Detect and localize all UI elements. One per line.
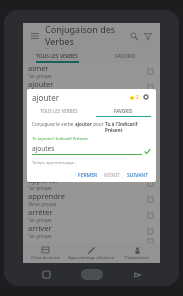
staticText: Verbes Français — [45, 47, 79, 49]
staticText: 1er groupe — [28, 73, 52, 79]
button[interactable]: Choix de forme — [23, 247, 68, 260]
other: Favorite apparaître — [145, 146, 155, 156]
staticText: 2 — [136, 94, 139, 101]
other: Favorite arrêter — [145, 210, 155, 220]
staticText: 1er groupe — [28, 185, 52, 191]
staticText: appeler — [28, 159, 55, 169]
button[interactable]: appeler — [23, 159, 160, 175]
other: Favorite ajouter — [145, 82, 155, 92]
button[interactable]: apparaître — [23, 143, 160, 159]
staticText: aimer — [28, 63, 49, 73]
other: Favorite apercevoir — [145, 114, 155, 124]
other: Favorite asseoir — [145, 239, 155, 243]
other: Favorite arriver — [145, 226, 155, 236]
staticText: Temps apprentissage : — [32, 160, 77, 166]
button[interactable]: apercevoir — [23, 111, 160, 127]
staticText: apparaître — [28, 143, 65, 153]
button[interactable]: Menu — [28, 29, 42, 43]
staticText: Tu à l'Indicatif Présent — [105, 121, 151, 133]
button[interactable]: FAVORIS — [91, 105, 156, 117]
button[interactable]: aimer — [23, 63, 160, 79]
staticText: pour — [92, 121, 105, 127]
staticText: Choix de forme — [31, 255, 60, 260]
other: Favorite apporter — [145, 178, 155, 188]
other: Favorite aimer — [145, 66, 155, 76]
button[interactable]: s'apercevoir — [23, 127, 160, 143]
staticText: 3ème groupe — [28, 121, 57, 127]
other: Favorite aller — [145, 98, 155, 108]
staticText: Conjugaison des Verbes — [45, 23, 127, 47]
staticText: Tu (ajouter) Indicatif Présent — [32, 136, 88, 142]
staticText: 3ème groupe — [28, 105, 57, 111]
staticText: 3ème groupe — [28, 153, 57, 159]
button[interactable]: Settings — [141, 92, 151, 102]
staticText: aller — [28, 95, 44, 105]
staticText: 1er groupe — [28, 217, 52, 223]
staticText: ajouter — [28, 79, 54, 89]
button[interactable]: FAVORIS — [91, 49, 160, 63]
staticText: SUIVANT — [127, 172, 149, 179]
staticText: Apprentissage d'écriture — [68, 255, 114, 260]
button[interactable]: asseoir — [23, 239, 160, 243]
button[interactable]: FERMER — [75, 170, 101, 181]
staticText: apprendre — [28, 191, 66, 201]
staticText: 3ème groupe — [28, 201, 57, 207]
staticText: TOUS LES VERBES — [36, 53, 78, 60]
staticText: 1er groupe — [28, 89, 52, 95]
staticText: 1er groupe — [28, 233, 52, 239]
button[interactable]: TOUS LES VERBES — [27, 105, 91, 117]
button[interactable]: Score — [127, 93, 136, 102]
button[interactable]: Filter — [141, 29, 155, 43]
staticText: arrêter — [28, 207, 53, 217]
staticText: arriver — [28, 223, 52, 233]
staticText: ajouter — [75, 121, 92, 127]
button[interactable]: ajouter — [23, 79, 160, 95]
staticText: FAVORIS — [115, 53, 136, 60]
button[interactable]: arrêter — [23, 207, 160, 223]
button[interactable]: RÉINIT — [101, 170, 124, 181]
staticText: apporter — [28, 175, 60, 185]
button[interactable]: aller — [23, 95, 160, 111]
staticText: asseoir — [28, 239, 54, 243]
other: Back — [114, 271, 162, 279]
staticText: FAVORIS — [114, 108, 133, 114]
button[interactable]: arriver — [23, 223, 160, 239]
staticText: 3ème groupe — [28, 137, 57, 143]
button[interactable]: apporter — [23, 175, 160, 191]
other: Recents — [22, 271, 70, 278]
staticText: FERMER — [78, 172, 98, 179]
staticText: Conjuguez le verbe — [32, 121, 75, 127]
button[interactable]: Prépositions — [114, 247, 160, 260]
other: Favorite apprendre — [145, 194, 155, 204]
staticText: Prépositions — [125, 255, 149, 260]
staticText: TOUS LES VERBES — [40, 108, 78, 114]
staticText: ajouter — [32, 92, 127, 103]
staticText: RÉINIT — [104, 172, 121, 179]
staticText: ajoutes — [32, 144, 55, 153]
button[interactable]: TOUS LES VERBES — [23, 49, 91, 63]
button[interactable]: apprendre — [23, 191, 160, 207]
button[interactable]: SUIVANT — [124, 170, 152, 181]
button[interactable]: Apprentissage d'écriture — [68, 247, 114, 260]
staticText: apercevoir — [28, 111, 66, 121]
other: Home — [70, 269, 114, 280]
button[interactable]: Search — [127, 29, 141, 43]
